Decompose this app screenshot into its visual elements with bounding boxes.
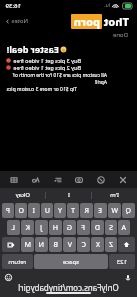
button[interactable]: C [77, 237, 90, 252]
button[interactable]: W [108, 203, 121, 218]
button[interactable]: Camera [71, 172, 87, 188]
button[interactable]: I [46, 188, 91, 202]
staticText: lu. [104, 2, 110, 9]
staticText: C [81, 240, 86, 250]
button[interactable]: M [21, 237, 34, 252]
staticText: I [67, 191, 70, 199]
staticText: P [5, 206, 10, 216]
button[interactable]: S [105, 220, 117, 235]
staticText: I'm [110, 191, 119, 199]
staticText: M [24, 240, 31, 250]
button[interactable]: Y [54, 203, 66, 218]
button[interactable]: T [67, 203, 79, 218]
staticText: K [25, 223, 30, 233]
staticText: T [71, 206, 75, 216]
button[interactable]: Dictation [124, 273, 133, 282]
staticText: I [32, 206, 35, 216]
button[interactable]: F [77, 220, 90, 235]
button[interactable]: U [41, 203, 53, 218]
staticText: space [62, 258, 79, 266]
staticText: 123 [116, 258, 127, 266]
button[interactable]: Text format [28, 172, 44, 188]
staticText: Okay [15, 191, 30, 199]
staticText: F [81, 223, 85, 233]
staticText: V [67, 240, 72, 250]
button[interactable]: Audio [93, 172, 109, 188]
button[interactable]: N [35, 237, 48, 252]
button[interactable]: 123 [109, 254, 135, 269]
button[interactable]: Backspace [2, 237, 20, 252]
staticText: S [109, 223, 113, 233]
button[interactable]: Grid [6, 172, 22, 188]
button[interactable]: G [63, 220, 76, 235]
button[interactable]: Okay [0, 188, 45, 202]
button[interactable]: Z [105, 237, 117, 252]
button[interactable]: R [80, 203, 93, 218]
staticText: Buy 3 pics get 1 video free [13, 57, 81, 64]
button[interactable]: X [91, 237, 104, 252]
button[interactable]: D [91, 220, 104, 235]
staticText: Notes [11, 17, 28, 25]
button[interactable]: Notes [5, 17, 28, 25]
staticText: return [8, 258, 26, 266]
button[interactable]: I [28, 203, 40, 218]
staticText: B [53, 240, 58, 250]
button[interactable]: E [94, 203, 107, 218]
button[interactable]: J [35, 220, 48, 235]
staticText: 16:39 [5, 2, 21, 10]
button[interactable]: Emoji [4, 273, 13, 282]
button[interactable]: return [2, 254, 33, 269]
staticText: Easter deal! [6, 43, 59, 55]
button[interactable]: O [15, 203, 27, 218]
staticText: H [52, 223, 58, 233]
button[interactable]: Q [122, 203, 135, 218]
staticText: Buy 2 pics get 1 video free [13, 64, 81, 71]
button[interactable]: K [21, 220, 34, 235]
button[interactable]: Format list [50, 172, 66, 188]
staticText: G [66, 223, 72, 233]
button[interactable]: P [2, 203, 14, 218]
staticText: U [44, 206, 50, 216]
staticText: Thot [103, 14, 129, 29]
staticText: W [111, 206, 118, 216]
button[interactable]: V [63, 237, 76, 252]
staticText: O [18, 206, 24, 216]
staticText: porn [73, 14, 100, 29]
staticText: E [98, 206, 102, 216]
button[interactable]: space [34, 254, 108, 269]
button[interactable]: Close [115, 172, 131, 188]
button[interactable]: H [49, 220, 62, 235]
staticText: All custom pics are $10 for the month of… [6, 72, 107, 86]
button[interactable]: I'm [92, 188, 137, 202]
button[interactable]: B [49, 237, 62, 252]
staticText: D [94, 223, 100, 233]
button[interactable]: Shift [118, 237, 135, 252]
staticText: Tip $10 or more 3 custom pics [6, 86, 77, 93]
staticText: N [38, 240, 44, 250]
staticText: J [40, 223, 42, 233]
staticText: OnlyFans.com/tinybabygirl [18, 282, 119, 293]
staticText: A [121, 223, 126, 233]
staticText: Y [58, 206, 62, 216]
staticText: R [84, 206, 89, 216]
button[interactable]: Done [112, 31, 128, 39]
staticText: Q [125, 206, 131, 216]
staticText: X [95, 240, 100, 250]
staticText: Z [108, 240, 113, 250]
staticText: L [11, 223, 15, 233]
button[interactable]: L [7, 220, 20, 235]
button[interactable]: A [118, 220, 130, 235]
